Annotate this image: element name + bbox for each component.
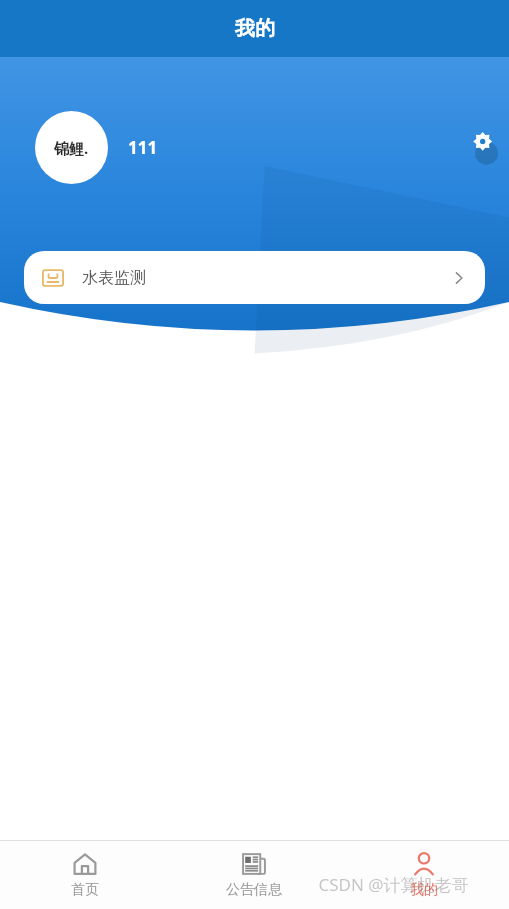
button[interactable]: 锦鲤. [35,111,158,184]
button[interactable]: 公告信息 [169,841,339,909]
button[interactable]: 水表监测 [24,251,485,304]
staticText: 111 [128,136,158,159]
staticText: 我的 [410,881,438,899]
staticText: 公告信息 [226,881,282,899]
staticText: 首页 [71,881,99,899]
button[interactable]: 首页 [0,841,169,909]
button[interactable]: Settings [462,126,506,170]
staticText: 水表监测 [82,268,146,288]
staticText: CSDN @计算机老哥 [318,873,469,896]
staticText: 我的 [235,16,275,41]
button[interactable]: 我的 [339,841,509,909]
staticText: 锦鲤. [54,138,89,158]
